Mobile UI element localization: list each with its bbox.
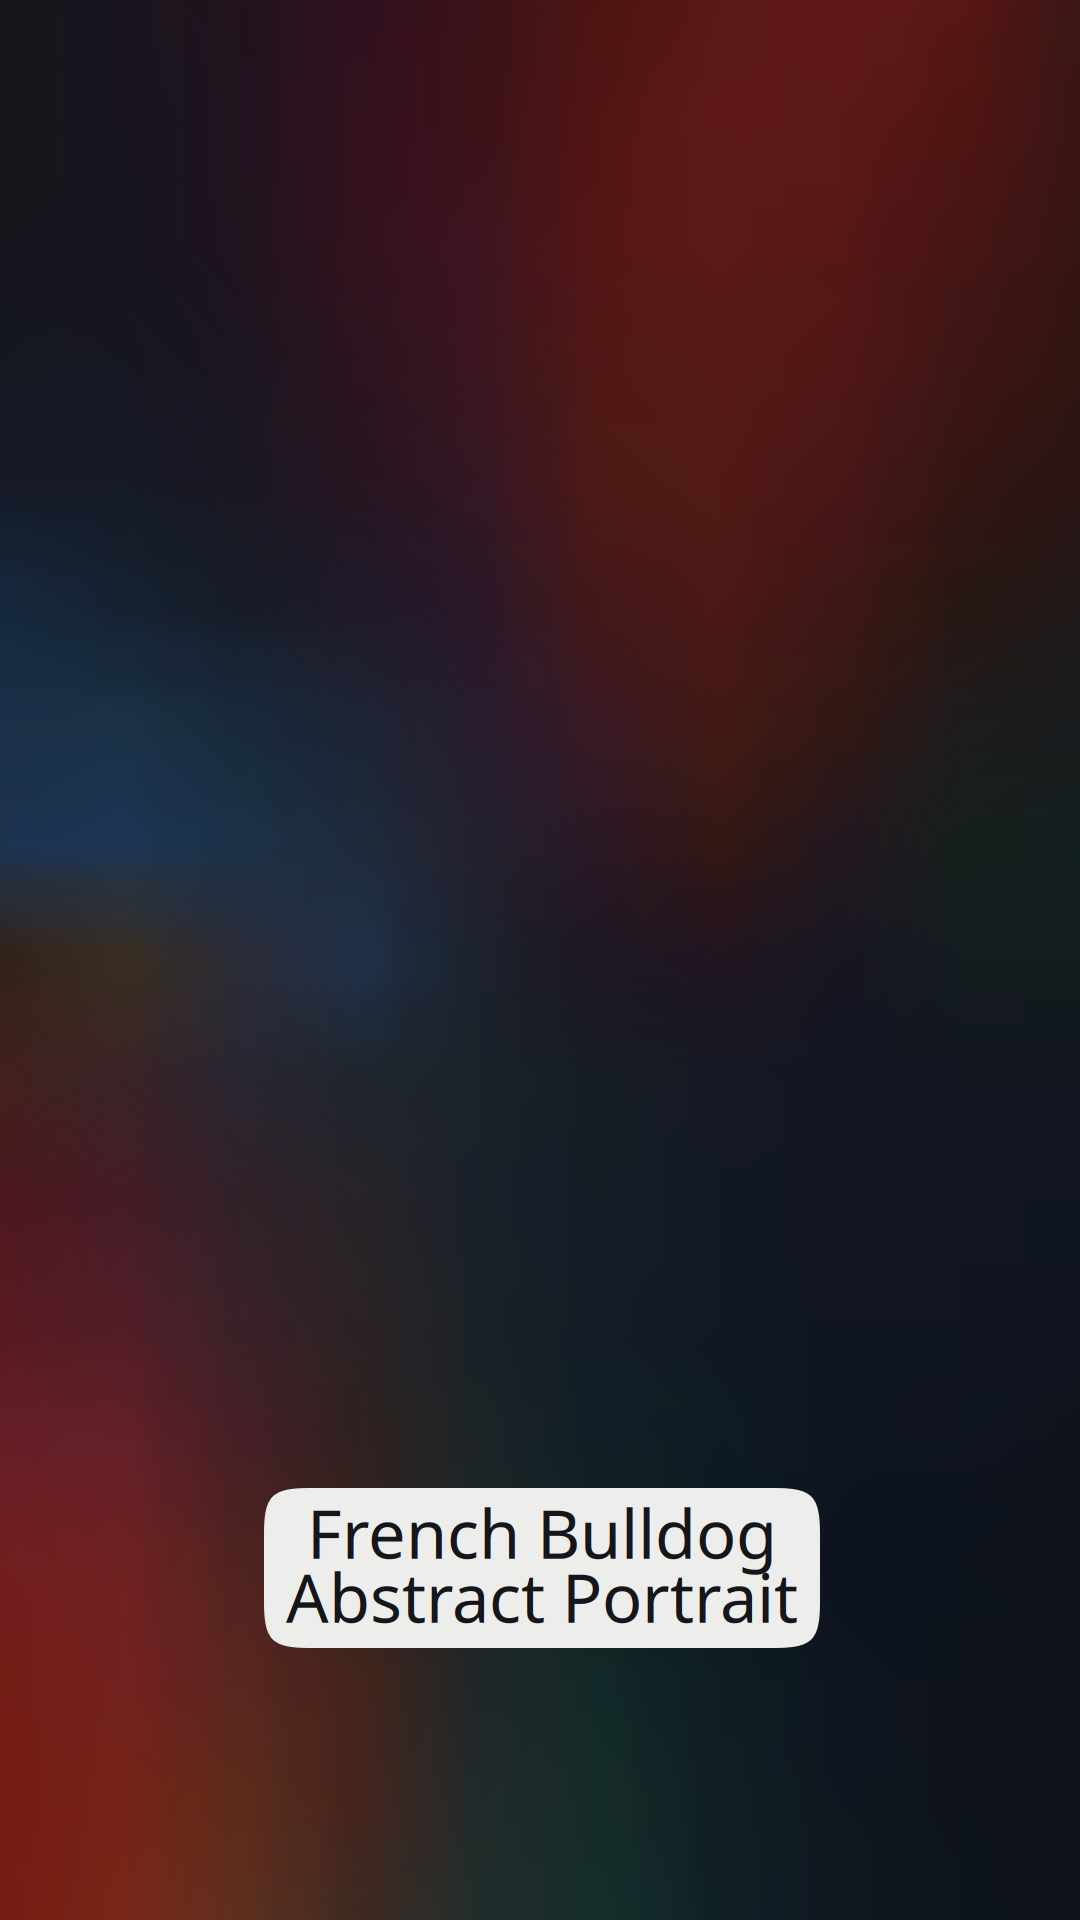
button[interactable]: French Bulldog: [264, 1488, 820, 1648]
staticText: French Bulldog: [307, 1489, 777, 1577]
staticText: Abstract Portrait: [286, 1553, 798, 1641]
